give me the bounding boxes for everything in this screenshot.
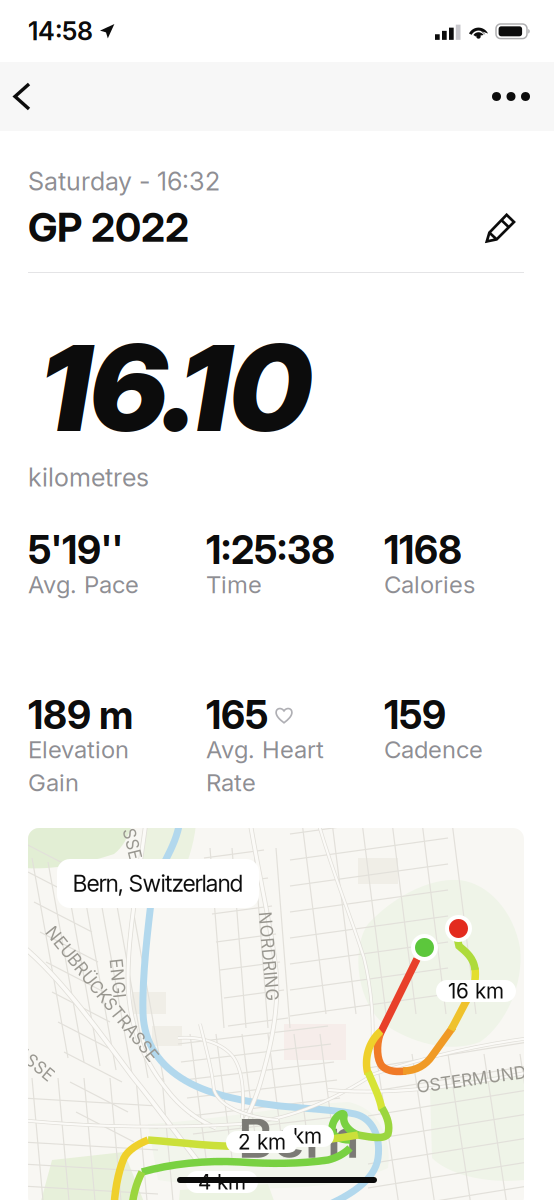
staticText: Avg. Heart Rate (206, 735, 324, 797)
button[interactable]: Edit workout name (477, 205, 524, 249)
staticText: 2 km (238, 1129, 286, 1154)
staticText: 189 m (28, 692, 133, 738)
staticText: Elevation Gain (28, 735, 129, 797)
staticText: 1:25:38 (206, 527, 335, 573)
staticText: Calories (384, 570, 475, 599)
staticText: Bern (238, 1106, 360, 1170)
staticText: 5'19'' (28, 527, 123, 573)
button[interactable]: More options (480, 68, 542, 124)
button[interactable]: Back (0, 68, 47, 125)
staticText: Bern, Switzerland (73, 870, 243, 897)
staticText: ASSE (14, 1054, 57, 1074)
staticText: ENGI (98, 968, 137, 988)
staticText: SSE (116, 834, 148, 854)
staticText: 159 (384, 692, 446, 738)
staticText: 165 (206, 692, 268, 738)
staticText: km (293, 1123, 322, 1148)
staticText: NORDRING (224, 946, 313, 966)
staticText: Avg. Pace (28, 570, 139, 599)
staticText: 4 km (198, 1169, 246, 1194)
staticText: OSTERMUNDIGEN (416, 1066, 554, 1087)
staticText: 16.10 (41, 316, 311, 460)
staticText: Time (206, 570, 262, 599)
staticText: NEUBRÜCKSTRASSE (18, 984, 186, 1004)
staticText: Saturday - 16:32 (28, 166, 220, 197)
staticText: kilometres (28, 462, 149, 493)
staticText: GP 2022 (28, 203, 189, 251)
staticText: 16 km (448, 978, 504, 1003)
staticText: 1168 (384, 527, 462, 573)
staticText: 14:58 (28, 16, 93, 46)
staticText: Cadence (384, 735, 483, 764)
